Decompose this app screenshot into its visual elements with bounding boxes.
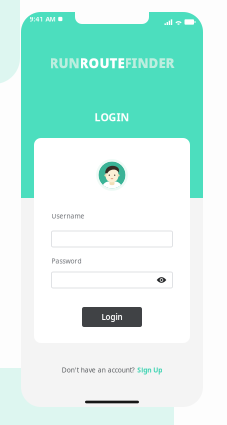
- button[interactable]: Login: [82, 307, 142, 327]
- staticText: RUN: [49, 54, 79, 72]
- staticText: FINDER: [124, 54, 174, 72]
- staticText: Username: [51, 212, 84, 220]
- staticText: 9:41 AM: [30, 15, 56, 23]
- staticText: LOGIN: [94, 110, 129, 124]
- staticText: Don't have an account?: [62, 366, 135, 374]
- button[interactable]: Sign Up: [137, 366, 162, 374]
- staticText: Login: [101, 312, 122, 322]
- staticText: Password: [51, 257, 81, 265]
- staticText: ROUTE: [79, 54, 124, 72]
- staticText: Sign Up: [137, 366, 162, 374]
